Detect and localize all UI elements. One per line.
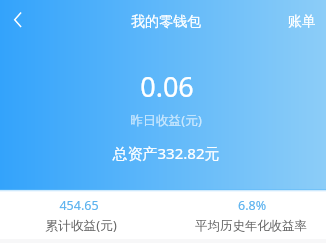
staticText: 总资产332.82元	[16, 143, 316, 163]
staticText: 昨日收益(元)	[16, 111, 316, 128]
button[interactable]: 账单	[281, 3, 323, 38]
staticText: 累计收益(元)	[0, 216, 231, 233]
staticText: 0.06	[17, 68, 317, 105]
staticText: 账单	[288, 13, 316, 31]
button[interactable]: Back	[0, 0, 36, 40]
button[interactable]	[5, 192, 155, 238]
staticText: 6.8%	[102, 197, 326, 214]
staticText: 平均历史年化收益率	[101, 218, 326, 234]
button[interactable]	[176, 192, 326, 238]
staticText: 454.65	[0, 197, 229, 214]
staticText: 我的零钱包	[16, 13, 316, 31]
